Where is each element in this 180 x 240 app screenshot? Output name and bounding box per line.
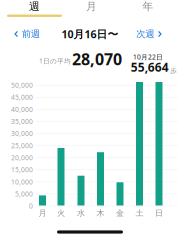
staticText: 歩 — [170, 67, 177, 75]
staticText: 50,000 — [11, 81, 33, 90]
staticText: 10月16日〜 — [61, 27, 118, 41]
staticText: 28,070 — [72, 48, 122, 70]
staticText: 40,000 — [11, 105, 33, 114]
staticText: 10月22日 — [133, 53, 163, 61]
staticText: 月 — [38, 208, 46, 218]
button[interactable]: 前週 — [10, 25, 44, 43]
staticText: 木 — [96, 208, 104, 218]
staticText: 次週 — [136, 28, 154, 40]
staticText: 年 — [142, 0, 153, 13]
staticText: 水 — [77, 208, 85, 218]
staticText: 15,000 — [11, 165, 33, 174]
staticText: 10,000 — [11, 177, 33, 186]
staticText: 火 — [57, 208, 65, 218]
staticText: 0 — [29, 202, 33, 210]
staticText: 20,000 — [11, 153, 33, 162]
staticText: 金 — [116, 208, 124, 218]
staticText: 1日の平均 — [39, 57, 71, 65]
button[interactable]: 週 — [6, 1, 62, 17]
staticText: 55,664 — [131, 59, 169, 75]
staticText: 土 — [135, 208, 143, 218]
staticText: 35,000 — [11, 117, 33, 126]
staticText: 45,000 — [11, 93, 33, 102]
staticText: 日 — [155, 208, 163, 218]
staticText: 25,000 — [11, 141, 33, 150]
staticText: 5,000 — [15, 189, 33, 198]
button[interactable]: 月 — [63, 1, 119, 17]
staticText: 30,000 — [11, 129, 33, 138]
button[interactable]: 年 — [120, 1, 176, 17]
button[interactable]: 次週 — [132, 25, 166, 43]
staticText: 月 — [86, 0, 97, 13]
staticText: 前週 — [22, 28, 40, 40]
staticText: 週 — [29, 0, 40, 13]
